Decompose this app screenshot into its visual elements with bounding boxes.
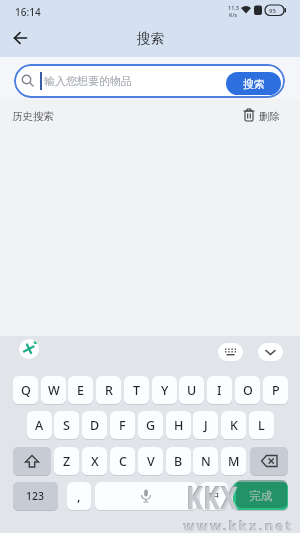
staticText: J — [204, 417, 208, 434]
staticText: G — [146, 417, 156, 434]
staticText: E — [77, 382, 84, 399]
button[interactable]: Y — [152, 376, 177, 404]
button[interactable]: B — [166, 447, 191, 475]
button[interactable] — [19, 339, 39, 359]
button[interactable]: T — [124, 376, 149, 404]
button[interactable]: P — [263, 376, 288, 404]
button[interactable] — [13, 447, 51, 475]
button[interactable]: X — [82, 447, 107, 475]
staticText: 输入您想要的物品 — [44, 74, 132, 88]
staticText: N — [201, 453, 211, 470]
button[interactable]: W — [41, 376, 66, 404]
staticText: K/s — [229, 11, 238, 18]
staticText: 中 — [208, 489, 220, 503]
staticText: H — [174, 417, 184, 434]
staticText: L — [258, 417, 265, 434]
button[interactable]: Z — [54, 447, 79, 475]
staticText: 123 — [26, 489, 45, 503]
button[interactable]: E — [68, 376, 93, 404]
staticText: V — [147, 453, 155, 470]
button[interactable] — [218, 343, 243, 361]
staticText: B — [174, 453, 183, 470]
staticText: 删除 — [259, 110, 280, 123]
staticText: Z — [63, 453, 71, 470]
staticText: M — [228, 453, 240, 470]
staticText: X — [91, 453, 99, 470]
staticText: www.kkx.net — [184, 517, 294, 533]
button[interactable]: 搜索 — [226, 72, 281, 95]
staticText: www.kkx.net — [183, 516, 293, 533]
button[interactable]: D — [82, 411, 107, 439]
button[interactable]: C — [110, 447, 135, 475]
button[interactable]: U — [179, 376, 204, 404]
staticText: R — [105, 382, 113, 399]
button[interactable]: Q — [13, 376, 38, 404]
button[interactable]: K — [221, 411, 246, 439]
button[interactable]: O — [235, 376, 260, 404]
staticText: KKX — [186, 474, 238, 518]
button[interactable]: 123 — [13, 482, 58, 510]
button[interactable]: H — [166, 411, 191, 439]
staticText: 搜索 — [243, 77, 265, 91]
staticText: 16:14 — [15, 5, 41, 19]
button[interactable] — [250, 447, 288, 475]
staticText: S — [63, 417, 70, 434]
staticText: I — [217, 382, 222, 399]
staticText: 完成 — [249, 489, 272, 503]
staticText: A — [35, 417, 44, 434]
button[interactable]: , — [67, 482, 91, 510]
staticText: K — [230, 417, 238, 434]
staticText: Q — [21, 382, 31, 399]
button[interactable]: M — [221, 447, 246, 475]
staticText: D — [90, 417, 100, 434]
button[interactable]: N — [193, 447, 218, 475]
button[interactable]: I — [207, 376, 232, 404]
button[interactable]: L — [249, 411, 274, 439]
button[interactable]: 删除 — [240, 105, 290, 125]
staticText: Y — [161, 382, 169, 399]
staticText: 历史搜索 — [12, 110, 54, 123]
button[interactable]: F — [110, 411, 135, 439]
button[interactable] — [258, 343, 283, 361]
staticText: F — [119, 417, 126, 434]
staticText: C — [119, 453, 127, 470]
staticText: U — [187, 382, 197, 399]
staticText: , — [77, 487, 81, 505]
button[interactable]: 中 — [200, 482, 228, 510]
button[interactable] — [14, 64, 285, 98]
staticText: KKX — [187, 475, 239, 519]
staticText: T — [133, 382, 141, 399]
button[interactable] — [8, 28, 34, 48]
button[interactable]: A — [27, 411, 52, 439]
button[interactable]: R — [96, 376, 121, 404]
button[interactable]: 完成 — [233, 482, 288, 510]
staticText: O — [243, 382, 253, 399]
staticText: P — [272, 382, 280, 399]
button[interactable]: S — [54, 411, 79, 439]
staticText: W — [48, 382, 60, 399]
button[interactable]: G — [138, 411, 163, 439]
staticText: 95 — [269, 7, 276, 15]
staticText: 搜索 — [137, 30, 164, 47]
button[interactable]: J — [193, 411, 218, 439]
staticText: 11.3 — [228, 4, 239, 11]
button[interactable] — [95, 482, 197, 510]
button[interactable]: V — [138, 447, 163, 475]
